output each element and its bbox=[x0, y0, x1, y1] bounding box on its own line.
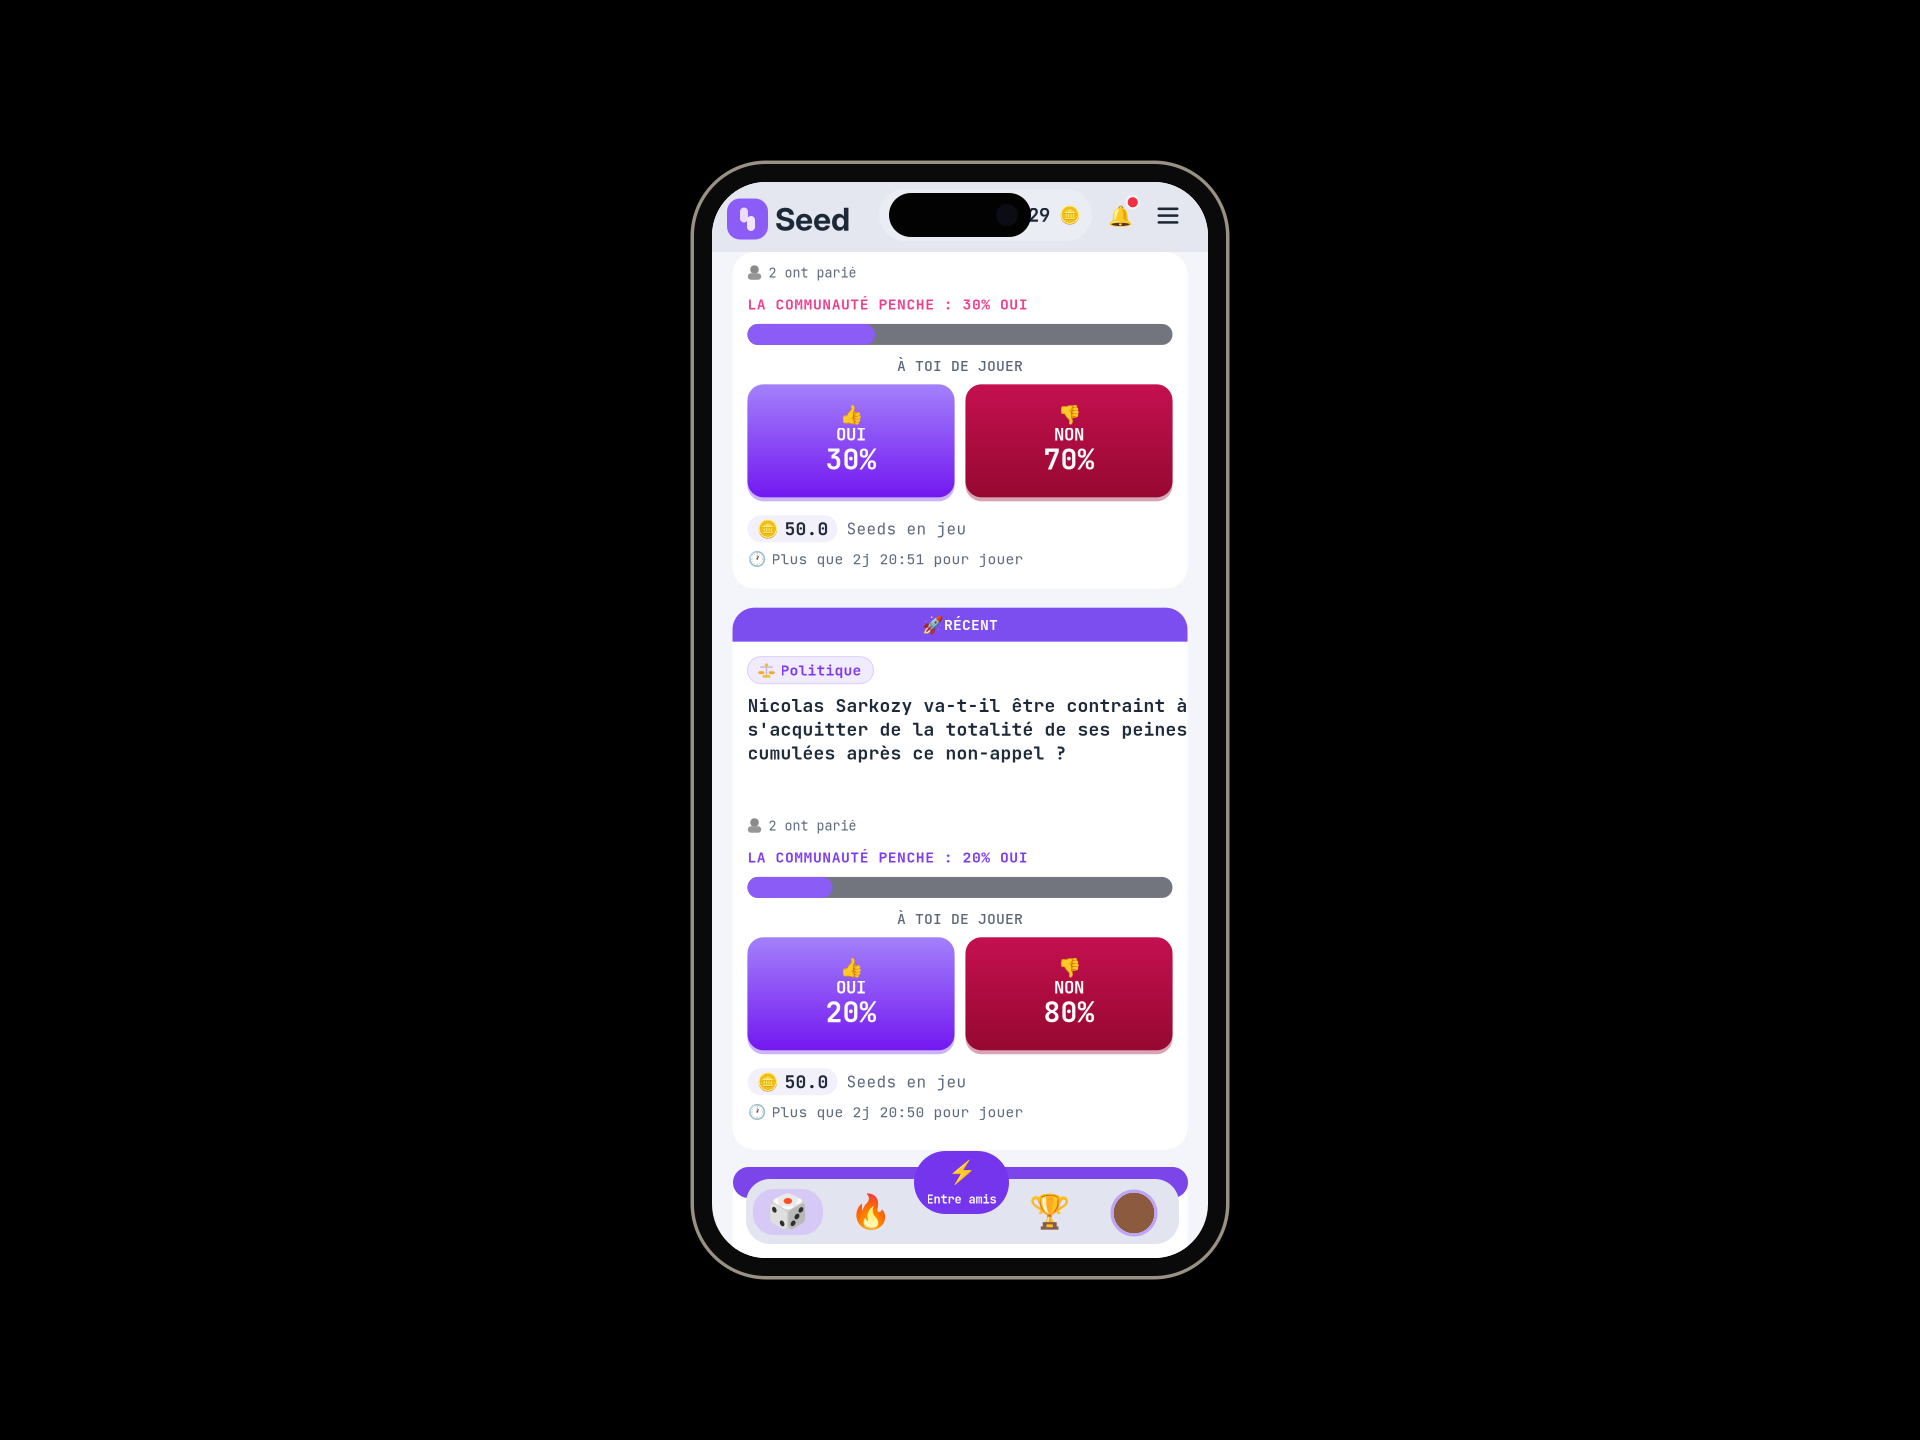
staticText: 👎 bbox=[1057, 956, 1080, 978]
staticText: 50.0 bbox=[784, 1070, 828, 1094]
staticText: 🔥 bbox=[850, 1192, 892, 1232]
staticText: 🪙 bbox=[1059, 205, 1081, 225]
button[interactable]: 👍 bbox=[747, 937, 954, 1054]
staticText: Entre amis bbox=[926, 1191, 996, 1207]
staticText: 👍 bbox=[839, 403, 862, 425]
staticText: Plus que 2j 20:51 pour jouer bbox=[771, 549, 1023, 569]
button[interactable]: Profil bbox=[1111, 1190, 1157, 1236]
button[interactable]: Tendances bbox=[846, 1189, 896, 1235]
staticText: ⚡ bbox=[947, 1159, 975, 1186]
staticText: 2 ont parié bbox=[768, 264, 856, 282]
staticText: À TOI DE JOUER bbox=[897, 356, 1023, 375]
button[interactable]: 1 529 bbox=[879, 189, 1092, 241]
button[interactable]: Politique bbox=[747, 657, 873, 684]
button[interactable]: Jouer bbox=[763, 1189, 813, 1235]
staticText: 🪙 bbox=[756, 519, 778, 539]
staticText: 🚀 bbox=[922, 614, 944, 635]
staticText: Seeds en jeu bbox=[846, 1071, 966, 1092]
button[interactable]: Menu bbox=[1153, 187, 1183, 257]
staticText: 20% bbox=[825, 994, 876, 1031]
staticText: 👍 bbox=[839, 956, 862, 978]
staticText: Seed bbox=[775, 200, 850, 238]
staticText: 🕐 bbox=[747, 550, 765, 568]
staticText: Seeds en jeu bbox=[846, 518, 966, 539]
staticText: OUI bbox=[836, 976, 866, 999]
staticText: 🎲 bbox=[767, 1192, 809, 1232]
staticText: 30% bbox=[825, 441, 876, 478]
staticText: 2 ont parié bbox=[768, 817, 856, 835]
staticText: LA COMMUNAUTÉ PENCHE : 20% OUI bbox=[747, 848, 1028, 867]
staticText: 1 529 bbox=[995, 203, 1050, 227]
button[interactable]: 👎 bbox=[965, 384, 1172, 501]
staticText: 🕐 bbox=[747, 1103, 765, 1121]
staticText: 70% bbox=[1043, 441, 1094, 478]
staticText: NON bbox=[1054, 423, 1084, 446]
staticText: Nicolas Sarkozy va-t-il être contraint à… bbox=[747, 694, 1187, 765]
staticText: Plus que 2j 20:50 pour jouer bbox=[771, 1102, 1023, 1122]
staticText: Nicolas Sarkozy sera-t-il acquitté les bbox=[747, 1255, 1165, 1278]
staticText: 80% bbox=[1043, 994, 1094, 1031]
staticText: À TOI DE JOUER bbox=[897, 909, 1023, 928]
staticText: RÉCENT bbox=[944, 615, 998, 634]
staticText: 🏆 bbox=[1029, 1192, 1071, 1232]
staticText: OUI bbox=[836, 423, 866, 446]
button[interactable]: Classement bbox=[1025, 1189, 1075, 1235]
staticText: 👎 bbox=[1057, 403, 1080, 425]
staticText: 🪙 bbox=[756, 1072, 778, 1092]
staticText: LA COMMUNAUTÉ PENCHE : 30% OUI bbox=[747, 295, 1028, 314]
staticText: Politique bbox=[780, 660, 861, 680]
button[interactable]: 👍 bbox=[747, 384, 954, 501]
staticText: 50.0 bbox=[784, 517, 828, 541]
button[interactable]: Seed bbox=[727, 187, 768, 257]
button[interactable]: Notifications bbox=[1107, 182, 1153, 263]
button[interactable]: 👎 bbox=[965, 937, 1172, 1054]
staticText: NON bbox=[1054, 976, 1084, 999]
staticText: 🔔 bbox=[1107, 204, 1132, 228]
button[interactable]: ⚡ bbox=[914, 1151, 1009, 1214]
